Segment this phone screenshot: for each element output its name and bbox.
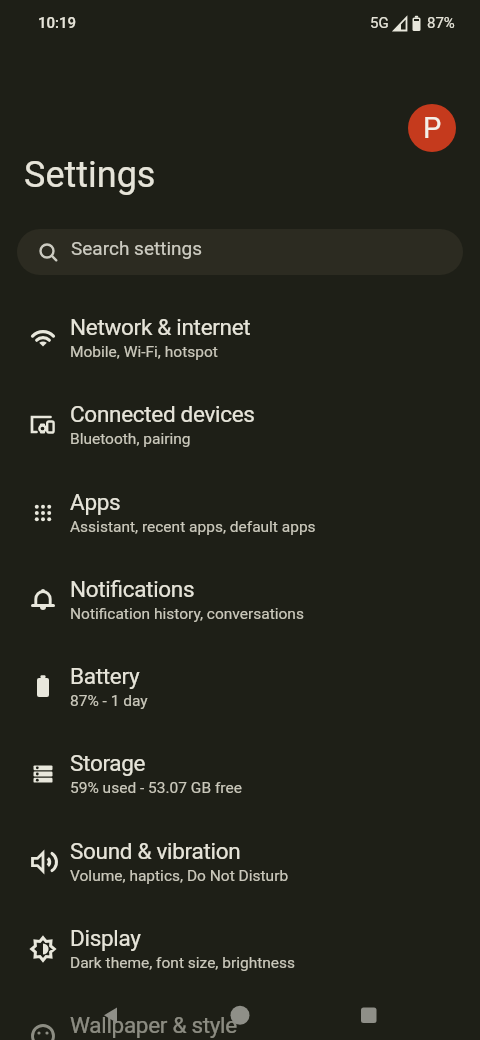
button[interactable]: Battery bbox=[0, 632, 480, 720]
staticText: P bbox=[423, 111, 442, 145]
staticText: Notification history, conversations bbox=[70, 605, 304, 623]
staticText: 59% used - 53.07 GB free bbox=[70, 779, 242, 797]
staticText: Assistant, recent apps, default apps bbox=[70, 518, 316, 536]
button[interactable]: Network & internet bbox=[0, 283, 480, 371]
staticText: Notifications bbox=[70, 576, 195, 602]
staticText: Bluetooth, pairing bbox=[70, 430, 191, 448]
staticText: Sound & vibration bbox=[70, 838, 241, 864]
staticText: 5G bbox=[370, 14, 389, 32]
button[interactable]: Search settings bbox=[17, 229, 463, 275]
staticText: Wallpaper & style bbox=[70, 1012, 237, 1038]
button[interactable]: P bbox=[408, 104, 456, 152]
staticText: Display bbox=[70, 925, 141, 951]
staticText: Storage bbox=[70, 750, 146, 776]
staticText: Apps bbox=[70, 489, 121, 515]
staticText: 87% bbox=[427, 14, 455, 32]
button[interactable]: Display bbox=[0, 894, 480, 982]
staticText: Battery bbox=[70, 663, 140, 689]
button[interactable]: Notifications bbox=[0, 545, 480, 633]
button[interactable]: Storage bbox=[0, 719, 480, 807]
staticText: 87% - 1 day bbox=[70, 692, 148, 710]
staticText: Dark theme, font size, brightness bbox=[70, 954, 296, 972]
button[interactable]: Wallpaper & style bbox=[0, 981, 480, 1040]
staticText: Network & internet bbox=[70, 314, 251, 340]
staticText: 10:19 bbox=[38, 14, 77, 32]
button[interactable]: Connected devices bbox=[0, 370, 480, 458]
staticText: Settings bbox=[24, 154, 156, 196]
staticText: Volume, haptics, Do Not Disturb bbox=[70, 867, 289, 885]
button[interactable]: Sound & vibration bbox=[0, 807, 480, 895]
staticText: Mobile, Wi-Fi, hotspot bbox=[70, 343, 218, 361]
staticText: Connected devices bbox=[70, 401, 255, 427]
button[interactable]: Apps bbox=[0, 458, 480, 546]
staticText: Search settings bbox=[71, 237, 202, 259]
